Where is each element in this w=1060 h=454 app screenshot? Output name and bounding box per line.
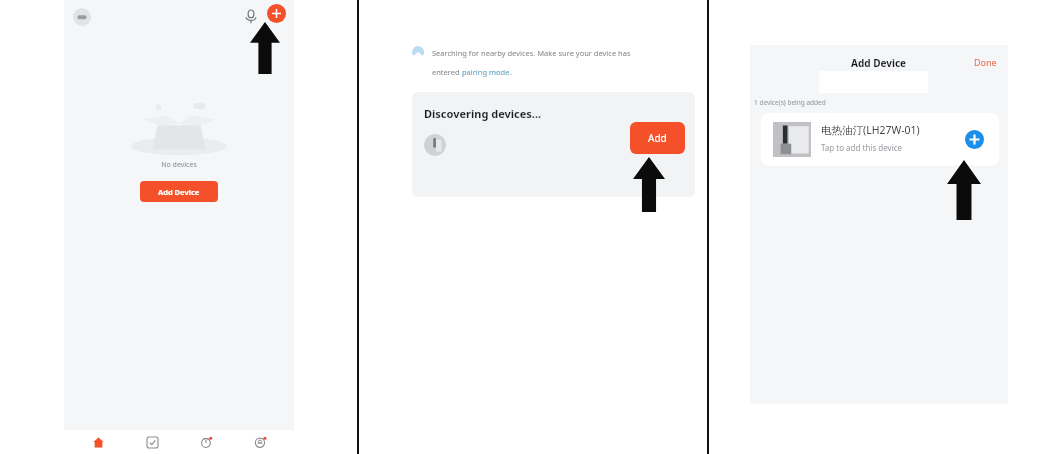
button[interactable]: Add [267,4,286,23]
staticText: Discovering devices... [424,106,542,121]
staticText: No devices [64,160,294,170]
staticText: 1 device(s) being added [754,98,826,107]
button[interactable]: Timer [186,430,226,454]
button[interactable]: Voice [240,6,262,28]
staticText: entered [432,67,462,77]
button[interactable]: Add device [965,130,984,149]
staticText: Add [648,131,667,145]
staticText: Tap to add this device [821,142,903,153]
staticText: Add Device [158,187,200,197]
staticText: 电热油汀(LH27W-01) [821,123,920,137]
button[interactable]: 电热油汀(LH27W-01) [761,113,999,166]
button[interactable]: Tasks [132,430,172,454]
button[interactable]: Add [630,122,685,154]
staticText: Add Device [851,56,907,70]
button[interactable]: Add Device [140,181,218,202]
button[interactable]: pairing mode [462,67,510,77]
button[interactable]: Done [974,56,997,68]
staticText: Done [974,56,997,68]
staticText: . [510,67,513,77]
button[interactable]: Profile [240,430,280,454]
staticText: Searching for nearby devices. Make sure … [432,48,631,58]
button[interactable]: Scan [72,7,92,27]
button[interactable]: Home [78,430,118,454]
